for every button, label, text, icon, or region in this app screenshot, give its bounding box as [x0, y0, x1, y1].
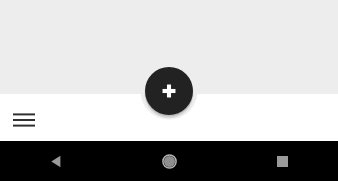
button[interactable]: Home: [112, 141, 226, 181]
button[interactable]: Add: [145, 67, 193, 115]
button[interactable]: Open navigation menu: [6, 102, 42, 138]
button[interactable]: Recent apps: [226, 141, 338, 181]
button[interactable]: Back: [0, 141, 112, 181]
